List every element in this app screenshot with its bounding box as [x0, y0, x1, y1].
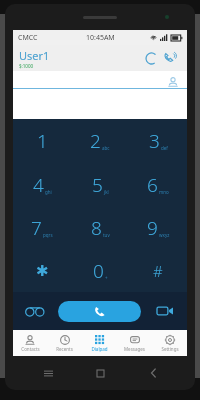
- button[interactable]: Contacts: [13, 330, 47, 356]
- button[interactable]: Recents: [47, 330, 82, 356]
- staticText: Messages: [124, 346, 145, 352]
- staticText: mno: [159, 189, 169, 195]
- button[interactable]: Home: [90, 363, 110, 383]
- staticText: User1: [19, 48, 50, 63]
- staticText: jkl: [104, 189, 109, 195]
- button[interactable]: Do not disturb: [141, 48, 161, 68]
- staticText: Contacts: [21, 346, 40, 352]
- button[interactable]: 0: [71, 249, 129, 292]
- button[interactable]: Call settings: [161, 48, 181, 68]
- staticText: 2: [90, 128, 101, 154]
- button[interactable]: 8: [71, 206, 129, 249]
- staticText: ghi: [45, 189, 52, 195]
- staticText: 3: [149, 128, 160, 154]
- staticText: 10:45AM: [86, 33, 115, 43]
- staticText: def: [161, 145, 168, 151]
- staticText: 5: [92, 172, 103, 198]
- button[interactable]: #: [129, 249, 187, 292]
- button[interactable]: Messages: [117, 330, 152, 356]
- button[interactable]: Add contact: [165, 74, 181, 90]
- staticText: 8: [91, 215, 102, 241]
- staticText: 1: [37, 128, 48, 154]
- staticText: Recents: [56, 346, 73, 352]
- button[interactable]: Back: [143, 363, 163, 383]
- staticText: #: [153, 261, 163, 281]
- staticText: pqrs: [43, 232, 53, 238]
- staticText: Settings: [161, 346, 179, 352]
- button[interactable]: Call: [58, 301, 141, 322]
- button[interactable]: 2: [71, 119, 129, 163]
- button[interactable]: ✱: [13, 249, 71, 292]
- button[interactable]: 1: [13, 119, 71, 163]
- button[interactable]: 4: [13, 163, 71, 206]
- staticText: 4: [33, 172, 44, 198]
- button[interactable]: Settings: [152, 330, 187, 356]
- staticText: wxyz: [159, 232, 170, 238]
- button[interactable]: Dialpad: [82, 330, 117, 356]
- button[interactable]: 7: [13, 206, 71, 249]
- staticText: ✱: [36, 262, 49, 279]
- button[interactable]: 5: [71, 163, 129, 206]
- staticText: 7: [31, 215, 42, 241]
- staticText: abc: [102, 145, 110, 151]
- button[interactable]: 3: [129, 119, 187, 163]
- staticText: +: [105, 275, 108, 281]
- staticText: 0: [93, 258, 104, 284]
- staticText: 9: [147, 215, 158, 241]
- button[interactable]: Video call: [143, 292, 187, 330]
- staticText: 6: [147, 172, 158, 198]
- button[interactable]: Voicemail: [13, 292, 56, 330]
- staticText: tuv: [103, 232, 110, 238]
- button[interactable]: 6: [129, 163, 187, 206]
- staticText: $:1000: [19, 63, 34, 69]
- staticText: Dialpad: [91, 346, 108, 352]
- button[interactable]: Menu: [38, 363, 58, 383]
- staticText: CMCC: [18, 33, 38, 43]
- button[interactable]: 9: [129, 206, 187, 249]
